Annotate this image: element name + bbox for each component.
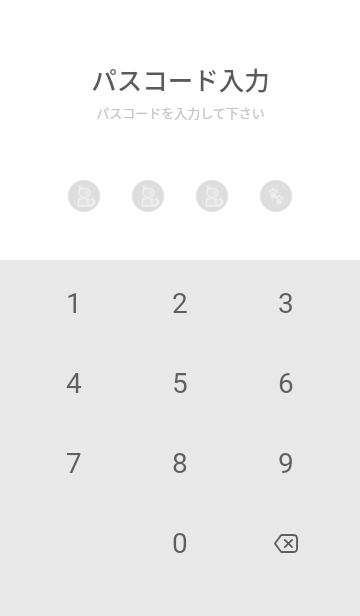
staticText: パスコード入力 — [91, 60, 270, 97]
staticText: 4 — [66, 367, 82, 400]
staticText: 6 — [278, 367, 294, 400]
staticText: 9 — [278, 447, 294, 480]
button[interactable]: 3 — [233, 263, 339, 343]
button[interactable]: 8 — [127, 423, 233, 503]
button[interactable]: 1 — [21, 263, 127, 343]
button[interactable]: 2 — [127, 263, 233, 343]
staticText: 5 — [172, 367, 188, 400]
staticText: 2 — [172, 287, 188, 320]
button[interactable]: 6 — [233, 343, 339, 423]
staticText: 8 — [172, 447, 188, 480]
button[interactable]: 4 — [21, 343, 127, 423]
button[interactable]: 0 — [127, 503, 233, 583]
button[interactable]: 9 — [233, 423, 339, 503]
staticText: 7 — [66, 447, 82, 480]
staticText: 1 — [66, 287, 82, 320]
other: Backspace — [274, 534, 298, 553]
staticText: 0 — [172, 527, 188, 560]
button[interactable]: 7 — [21, 423, 127, 503]
staticText: 3 — [278, 287, 294, 320]
staticText: パスコードを入力して下さい — [96, 103, 265, 122]
button[interactable]: Backspace — [233, 503, 339, 583]
button[interactable]: 5 — [127, 343, 233, 423]
